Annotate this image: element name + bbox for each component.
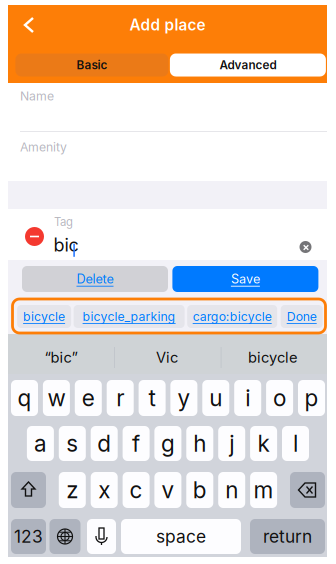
staticText: bicycle [23,309,65,324]
button[interactable]: Dictate [87,519,116,554]
staticText: space [156,526,206,547]
staticText: bicycle_parking [83,309,176,324]
staticText: i [245,384,250,412]
staticText: u [209,384,222,412]
button[interactable]: v [154,472,181,508]
button[interactable]: x [91,472,118,508]
button[interactable]: b [186,472,213,508]
button[interactable]: s [59,426,86,461]
staticText: y [177,384,190,412]
staticText: Amenity [20,139,67,154]
staticText: g [161,430,175,457]
staticText: d [97,430,111,457]
staticText: h [193,430,206,457]
button[interactable]: return [250,519,325,554]
button[interactable]: o [266,380,293,416]
button[interactable]: y [170,380,197,416]
staticText: c [130,476,143,504]
staticText: Tag [54,215,73,229]
button[interactable]: space [121,519,241,554]
button[interactable]: g [154,426,181,461]
staticText: z [66,476,78,504]
staticText: cargo:bicycle [193,309,272,324]
button[interactable]: d [91,426,118,461]
button[interactable]: Back [16,13,42,37]
staticText: Done [287,309,317,324]
button[interactable]: t [139,380,166,416]
button[interactable]: Shift [11,472,46,508]
button[interactable]: e [75,380,102,416]
staticText: s [66,430,78,457]
staticText: Save [231,271,260,287]
staticText: o [273,384,286,412]
staticText: bic [53,234,78,256]
staticText: r [116,384,124,412]
button[interactable]: Basic [15,53,168,76]
button[interactable]: j [218,426,245,461]
button[interactable]: l [282,426,309,461]
button[interactable]: cargo:bicycle [187,305,277,328]
staticText: 123 [14,526,43,547]
button[interactable]: Advanced [170,53,326,76]
button[interactable]: k [250,426,277,461]
staticText: n [225,476,238,504]
button[interactable]: f [123,426,150,461]
staticText: t [149,384,156,412]
staticText: bicycle [248,349,298,366]
button[interactable]: a [27,426,54,461]
button[interactable]: r [107,380,134,416]
staticText: q [17,384,31,412]
staticText: w [47,384,65,412]
button[interactable]: w [43,380,70,416]
button[interactable]: bicycle_parking [74,305,185,328]
staticText: j [229,430,234,457]
staticText: Delete [76,271,113,287]
button[interactable]: p [298,380,325,416]
button[interactable]: Save [172,266,318,292]
staticText: l [293,430,298,457]
staticText: Advanced [219,58,276,72]
staticText: Name [20,88,54,103]
button[interactable]: Clear text [299,241,311,253]
button[interactable]: Done [281,305,323,328]
staticText: “bic” [44,349,77,366]
button[interactable]: c [123,472,150,508]
staticText: Add place [129,16,205,34]
button[interactable]: 123 [11,519,46,554]
button[interactable]: Remove tag [25,227,44,246]
staticText: f [132,430,140,457]
button[interactable]: Switch keyboard [49,519,80,554]
staticText: k [258,430,270,457]
staticText: Vic [156,349,178,366]
button[interactable]: u [202,380,229,416]
staticText: v [161,476,174,504]
button[interactable]: Delete [290,472,325,508]
staticText: e [82,384,95,412]
staticText: p [304,384,318,412]
button[interactable]: i [234,380,261,416]
button[interactable]: Delete [22,266,168,292]
staticText: a [34,430,47,457]
staticText: return [263,526,312,547]
staticText: x [98,476,110,504]
button[interactable]: n [218,472,245,508]
button[interactable]: z [59,472,86,508]
staticText: Basic [76,58,107,72]
button[interactable]: h [186,426,213,461]
button[interactable]: bicycle [17,305,71,328]
button[interactable]: m [250,472,277,508]
button[interactable]: q [11,380,38,416]
staticText: b [193,476,207,504]
staticText: m [254,476,274,504]
